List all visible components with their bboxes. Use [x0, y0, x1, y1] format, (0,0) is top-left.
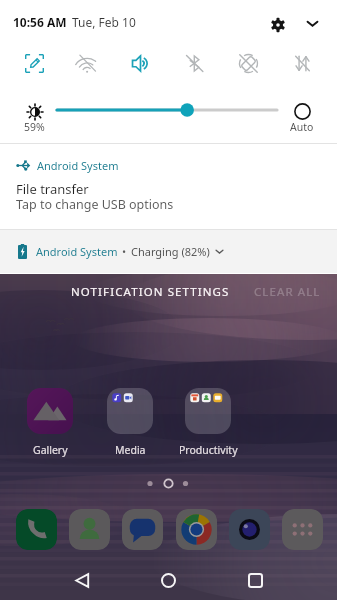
- button[interactable]: NOTIFICATION SETTINGS: [71, 284, 230, 300]
- button[interactable]: Camera: [229, 509, 270, 550]
- button[interactable]: Wi-Fi: [61, 44, 114, 82]
- staticText: 59%: [24, 120, 45, 134]
- button[interactable]: Home: [146, 558, 190, 600]
- button[interactable]: Messages: [122, 509, 163, 550]
- staticText: Android System: [36, 244, 118, 259]
- button[interactable]: Recent apps: [233, 558, 277, 600]
- button[interactable]: Screen capture: [8, 44, 61, 82]
- button[interactable]: Bluetooth: [167, 44, 221, 82]
- staticText: File transfer: [16, 180, 89, 198]
- button[interactable]: Media: [96, 388, 164, 457]
- staticText: •: [122, 244, 127, 259]
- staticText: 10:56 AM: [13, 14, 67, 30]
- staticText: Charging (82%): [131, 244, 210, 259]
- button[interactable]: CLEAR ALL: [254, 284, 321, 300]
- button[interactable]: Sound: [114, 44, 167, 82]
- button[interactable]: Auto-rotate: [221, 44, 275, 82]
- button[interactable]: Android System: [0, 144, 337, 229]
- button[interactable]: Chrome: [176, 509, 217, 550]
- button[interactable]: Collapse: [297, 8, 327, 38]
- button[interactable]: Back: [60, 558, 104, 600]
- button[interactable]: Gallery: [16, 388, 84, 457]
- button[interactable]: Contacts: [69, 509, 110, 550]
- button[interactable]: Productivity: [174, 388, 242, 457]
- staticText: Android System: [37, 158, 119, 173]
- staticText: Auto: [290, 120, 314, 134]
- button[interactable]: Android System: [0, 230, 337, 273]
- staticText: Tue, Feb 10: [72, 14, 136, 30]
- staticText: Media: [115, 443, 146, 457]
- button[interactable]: Settings: [263, 10, 293, 40]
- staticText: Productivity: [179, 443, 238, 457]
- button[interactable]: Data transfer: [275, 44, 329, 82]
- staticText: Gallery: [33, 443, 68, 457]
- button[interactable]: Phone: [16, 509, 57, 550]
- button[interactable]: Auto brightness: [293, 102, 311, 120]
- staticText: Tap to change USB options: [16, 196, 174, 213]
- button[interactable]: Apps: [282, 509, 323, 550]
